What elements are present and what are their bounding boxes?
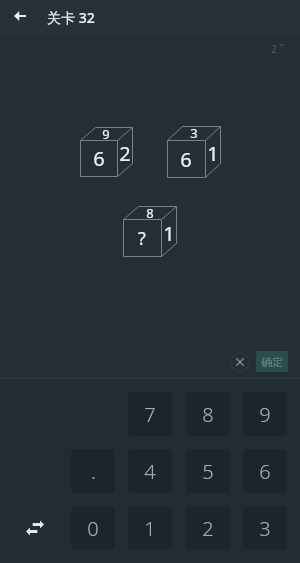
button[interactable]: Back <box>4 0 36 32</box>
staticText: 7 <box>144 401 156 428</box>
staticText: 8 <box>202 401 214 428</box>
button[interactable]: 7 <box>128 392 172 436</box>
button[interactable]: 0 <box>71 506 115 550</box>
staticText: 9 <box>259 401 271 428</box>
staticText: 6 <box>93 145 105 172</box>
staticText: 3 <box>190 124 198 142</box>
button[interactable]: Clear <box>230 352 250 372</box>
button[interactable]: 4 <box>128 449 172 493</box>
staticText: 9 <box>102 125 110 143</box>
staticText: 8 <box>146 204 154 222</box>
staticText: 1 <box>163 220 175 247</box>
staticText: 6 <box>259 458 271 485</box>
staticText: 0 <box>87 515 99 542</box>
staticText: 4 <box>144 458 156 485</box>
staticText: 6 <box>180 146 192 173</box>
staticText: 确定 <box>261 355 283 369</box>
staticText: 1 <box>144 515 156 542</box>
button[interactable]: 1 <box>128 506 172 550</box>
staticText: 2 <box>119 140 131 167</box>
staticText: 关卡 32 <box>47 8 95 27</box>
staticText: 1 <box>207 140 219 167</box>
button[interactable]: 3 <box>243 506 287 550</box>
button[interactable]: 8 <box>186 392 230 436</box>
button[interactable]: 确定 <box>256 351 288 372</box>
staticText: 3 <box>259 515 271 542</box>
button[interactable]: Swap <box>13 506 57 550</box>
button[interactable]: . <box>71 449 115 493</box>
staticText: 5 <box>202 458 214 485</box>
staticText: ? <box>138 226 146 251</box>
staticText: 2 <box>271 42 277 56</box>
staticText: 2 <box>202 515 214 542</box>
staticText: . <box>91 458 96 485</box>
button[interactable]: 9 <box>243 392 287 436</box>
button[interactable]: 2 <box>186 506 230 550</box>
button[interactable]: 6 <box>243 449 287 493</box>
button[interactable]: 5 <box>186 449 230 493</box>
button[interactable]: Hints remaining <box>266 40 288 56</box>
